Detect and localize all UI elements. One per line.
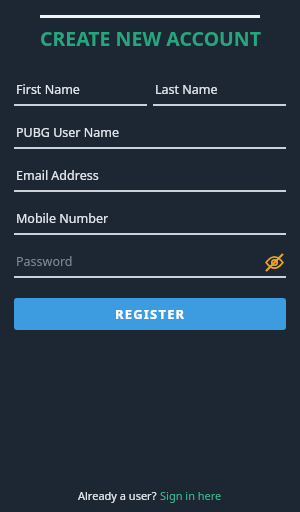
button[interactable]: First Name: [14, 77, 147, 106]
staticText: Already a user?: [78, 488, 160, 503]
staticText: REGISTER: [115, 305, 186, 323]
button[interactable]: Password: [14, 249, 286, 278]
staticText: CREATE NEW ACCOUNT: [40, 25, 261, 52]
button[interactable]: Last Name: [153, 77, 286, 106]
button[interactable]: Email Address: [14, 163, 286, 192]
staticText: Sign in here: [160, 488, 222, 503]
staticText: Password: [16, 253, 73, 270]
staticText: Last Name: [155, 81, 218, 98]
staticText: PUBG User Name: [16, 124, 120, 141]
button[interactable]: Toggle password visibility: [262, 250, 286, 274]
button[interactable]: REGISTER: [14, 298, 286, 330]
staticText: Email Address: [16, 167, 99, 184]
button[interactable]: PUBG User Name: [14, 120, 286, 149]
button[interactable]: Mobile Number: [14, 206, 286, 235]
staticText: Mobile Number: [16, 210, 109, 227]
staticText: First Name: [16, 81, 80, 98]
button[interactable]: Already a user?: [78, 488, 222, 503]
